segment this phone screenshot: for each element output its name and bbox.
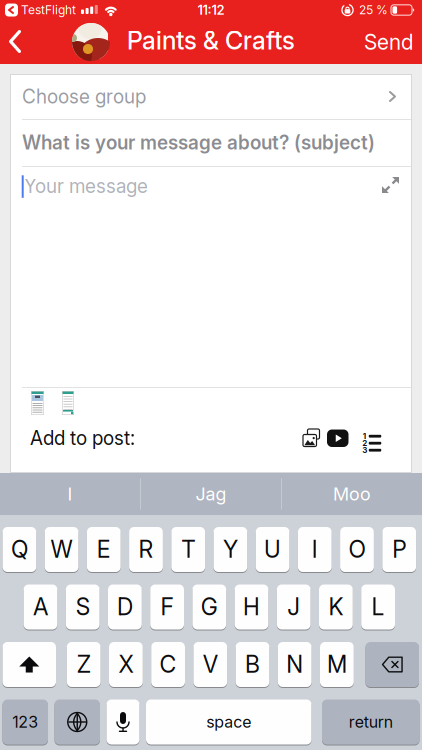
staticText: P (392, 536, 406, 563)
staticText: I (67, 483, 72, 505)
button[interactable]: N (278, 641, 312, 687)
staticText: K (328, 593, 343, 620)
staticText: G (201, 593, 218, 620)
staticText: TestFlight (21, 3, 76, 17)
button[interactable]: S (66, 584, 100, 630)
button[interactable]: T (171, 526, 205, 572)
staticText: Paints & Crafts (127, 26, 295, 55)
button[interactable]: R (129, 526, 163, 572)
button[interactable]: B (236, 641, 269, 687)
button[interactable]: L (361, 584, 395, 630)
staticText: S (76, 593, 90, 620)
staticText: H (243, 593, 260, 620)
staticText: return (349, 713, 393, 731)
staticText: Add to post: (30, 427, 135, 449)
button[interactable]: C (151, 641, 185, 687)
staticText: 2 (362, 438, 367, 448)
staticText: A (33, 593, 48, 620)
button[interactable]: G (192, 584, 226, 630)
staticText: Y (223, 536, 238, 563)
button[interactable]: Moo (282, 473, 422, 515)
button[interactable]: E (87, 526, 121, 572)
staticText: 1 (363, 431, 366, 441)
button[interactable]: Your message (10, 167, 412, 387)
button[interactable]: Q (2, 526, 36, 572)
staticText: D (117, 593, 133, 620)
staticText: F (161, 593, 174, 620)
staticText: M (327, 651, 347, 678)
button[interactable]: What is your message about? (subject) (10, 120, 412, 166)
button[interactable]: Dictate (106, 699, 139, 745)
button[interactable]: Add photos (299, 425, 324, 452)
button[interactable]: A (24, 584, 57, 630)
staticText: Choose group (22, 85, 146, 108)
button[interactable]: Jag (141, 473, 281, 515)
button[interactable]: Send (364, 21, 422, 63)
staticText: E (97, 536, 111, 563)
staticText: 11:12 (197, 2, 224, 18)
staticText: Z (77, 651, 91, 678)
button[interactable]: X (109, 641, 143, 687)
button[interactable]: return (322, 699, 419, 745)
button[interactable]: P (382, 526, 416, 572)
staticText: T (181, 536, 195, 563)
staticText: W (51, 536, 73, 563)
staticText: X (118, 651, 133, 678)
staticText: What is your message about? (subject) (22, 131, 375, 154)
staticText: U (264, 536, 281, 563)
staticText: Q (11, 536, 28, 563)
button[interactable]: Delete (365, 641, 419, 687)
staticText: space (206, 713, 251, 731)
button[interactable]: V (193, 641, 227, 687)
staticText: R (138, 536, 153, 563)
staticText: V (203, 651, 218, 678)
button[interactable]: Add list (355, 424, 382, 452)
button[interactable]: space (146, 699, 311, 745)
staticText: N (286, 651, 303, 678)
button[interactable]: Z (67, 641, 101, 687)
staticText: Send (364, 30, 413, 54)
staticText: 3 (362, 445, 367, 455)
button[interactable]: F (150, 584, 184, 630)
staticText: Jag (195, 483, 226, 505)
button[interactable]: Add YouTube video (323, 425, 352, 451)
staticText: O (348, 536, 365, 563)
button[interactable]: Back (0, 20, 21, 63)
button[interactable]: Shift (2, 641, 56, 687)
button[interactable]: I (0, 473, 140, 515)
button[interactable]: U (256, 526, 289, 572)
button[interactable]: Next keyboard (54, 699, 100, 745)
button[interactable]: J (277, 584, 311, 630)
staticText: I (312, 536, 318, 563)
button[interactable]: H (235, 584, 268, 630)
button[interactable]: M (320, 641, 354, 687)
staticText: Moo (333, 483, 371, 505)
button[interactable]: Expand (376, 170, 405, 199)
button[interactable]: W (45, 526, 78, 572)
button[interactable]: D (108, 584, 142, 630)
button[interactable]: O (340, 526, 374, 572)
staticText: B (245, 651, 260, 678)
button[interactable]: 123 (2, 699, 48, 745)
staticText: Your message (24, 175, 148, 197)
button[interactable]: K (319, 584, 353, 630)
staticText: 123 (12, 713, 38, 731)
button[interactable]: I (298, 526, 332, 572)
button[interactable]: Choose group (10, 74, 412, 119)
staticText: C (160, 651, 177, 678)
staticText: 25 % (359, 3, 388, 17)
button[interactable]: Y (213, 526, 247, 572)
staticText: L (372, 593, 385, 620)
staticText: J (287, 593, 300, 620)
